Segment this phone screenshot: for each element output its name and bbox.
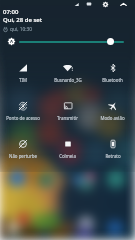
button[interactable]: Transmitir xyxy=(45,92,90,130)
staticText: Modo avião xyxy=(100,115,125,121)
staticText: Bluetooth xyxy=(102,77,123,83)
button[interactable]: TIM xyxy=(0,54,45,92)
button[interactable]: Não perturbe xyxy=(0,130,45,168)
button[interactable]: Retrato xyxy=(90,130,135,168)
staticText: TIM xyxy=(19,77,27,83)
button[interactable]: Bluetooth xyxy=(90,54,135,92)
button[interactable]: Busnardo_3G xyxy=(45,54,90,92)
staticText: qui, 10:30 xyxy=(10,26,32,33)
staticText: Qui, 28 de set xyxy=(3,16,43,24)
staticText: Busnardo_3G xyxy=(54,77,82,83)
staticText: Não perturbe xyxy=(9,153,37,159)
button[interactable]: Modo avião xyxy=(90,92,135,130)
button[interactable]: Colmeia xyxy=(45,130,90,168)
staticText: Transmitir xyxy=(57,115,78,121)
staticText: Colmeia xyxy=(59,153,76,159)
button[interactable]: Settings xyxy=(101,0,109,8)
staticText: Ponto de acesso xyxy=(6,115,40,121)
button[interactable]: Ponto de acesso xyxy=(0,92,45,130)
button[interactable]: Collapse panel xyxy=(119,0,127,8)
staticText: 07:00 xyxy=(3,8,19,16)
staticText: Retrato xyxy=(105,153,121,159)
